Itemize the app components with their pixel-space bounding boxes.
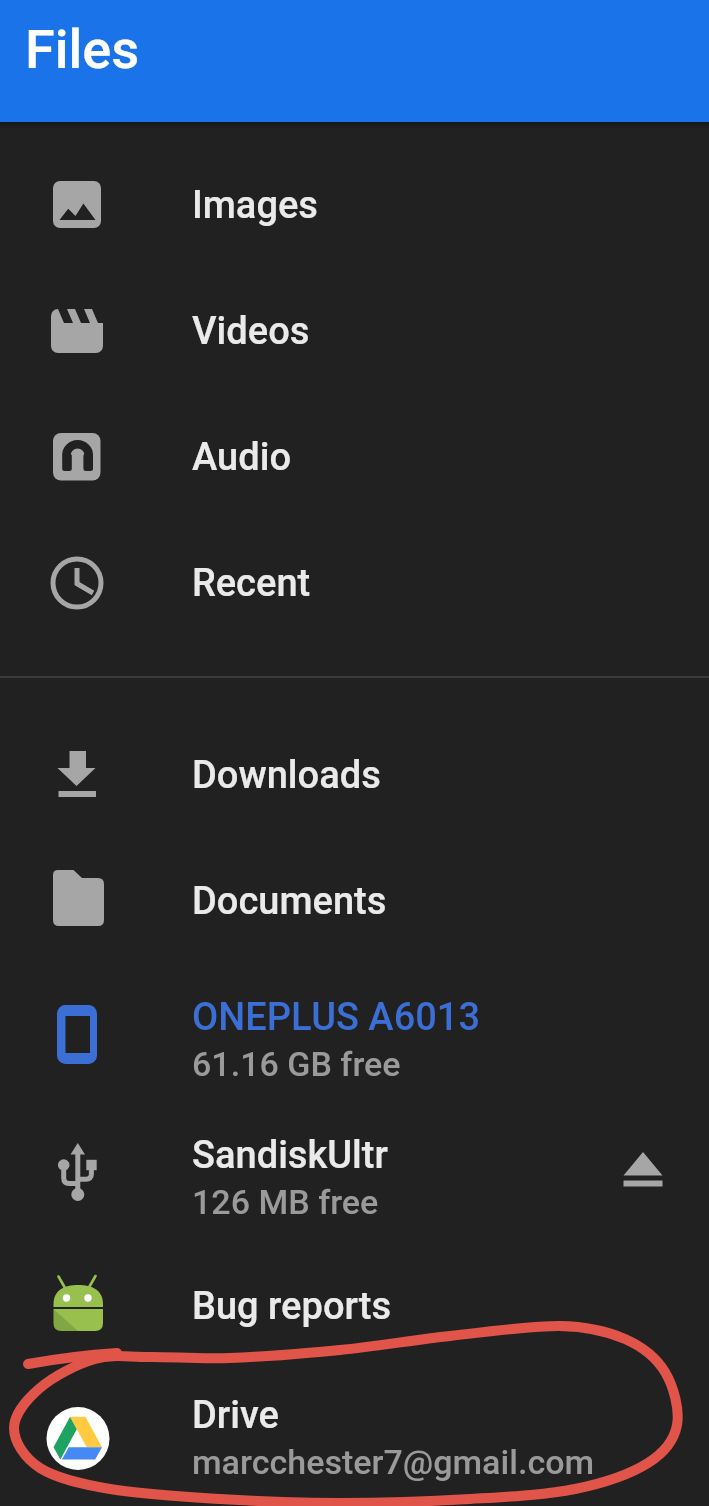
staticText: Audio (192, 435, 292, 480)
button[interactable]: Documents (0, 838, 709, 964)
staticText: Documents (192, 879, 387, 924)
staticText: marcchester7@gmail.com (192, 1442, 595, 1482)
staticText: 61.16 GB free (192, 1044, 401, 1084)
staticText: Files (25, 18, 140, 81)
staticText: Drive (192, 1393, 279, 1438)
button[interactable]: Bug reports (0, 1248, 709, 1364)
button[interactable]: Audio (0, 394, 709, 520)
button[interactable]: SandiskUltr (0, 1106, 709, 1248)
button[interactable]: Recent (0, 520, 709, 646)
button[interactable]: Drive (0, 1366, 709, 1506)
staticText: Recent (192, 561, 311, 606)
staticText: Videos (192, 309, 310, 354)
button[interactable]: ONEPLUS A6013 (0, 972, 709, 1106)
staticText: Images (192, 183, 318, 228)
button[interactable]: Videos (0, 268, 709, 394)
staticText: ONEPLUS A6013 (192, 995, 481, 1040)
staticText: SandiskUltr (192, 1133, 388, 1178)
staticText: 126 MB free (192, 1182, 379, 1222)
button[interactable]: Images (0, 142, 709, 268)
button[interactable]: Files (0, 0, 709, 122)
staticText: Downloads (192, 753, 381, 798)
staticText: Bug reports (192, 1284, 392, 1329)
button[interactable]: Downloads (0, 712, 709, 838)
